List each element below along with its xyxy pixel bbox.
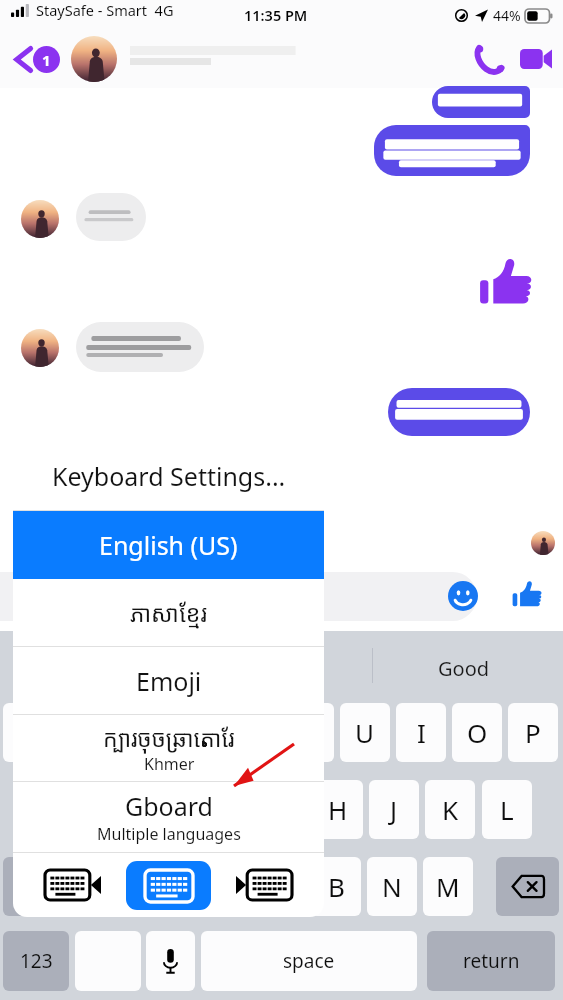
button[interactable]: Dictate bbox=[146, 931, 195, 991]
button[interactable]: Call bbox=[466, 36, 512, 82]
staticText: 44% bbox=[493, 6, 521, 25]
staticText: Gboard bbox=[125, 789, 213, 823]
staticText: English (US) bbox=[99, 528, 238, 562]
button[interactable]: D bbox=[144, 780, 194, 839]
staticText: D bbox=[160, 792, 179, 827]
button[interactable]: Emoji keyboard bbox=[75, 931, 141, 991]
staticText: 11:35 PM bbox=[244, 5, 308, 25]
staticText: 123 bbox=[20, 948, 53, 974]
staticText: space bbox=[283, 948, 335, 974]
button[interactable]: B bbox=[311, 857, 361, 916]
staticText: Good bbox=[438, 655, 490, 682]
button[interactable]: Previous keyboard bbox=[45, 867, 101, 903]
staticText: ភាសាខ្មែរ bbox=[130, 597, 208, 628]
staticText: X bbox=[159, 869, 175, 904]
button[interactable]: Y bbox=[284, 703, 334, 762]
staticText: I bbox=[417, 715, 426, 750]
staticText: return bbox=[463, 948, 520, 974]
button[interactable]: P bbox=[508, 703, 558, 762]
staticText: P bbox=[525, 715, 541, 750]
button[interactable]: Z bbox=[86, 857, 136, 916]
staticText: 1 bbox=[42, 50, 51, 70]
staticText: Keyboard Settings... bbox=[52, 459, 286, 493]
staticText: L bbox=[500, 792, 514, 827]
button[interactable]: U bbox=[340, 703, 390, 762]
staticText: StaySafe - Smart 4G bbox=[36, 0, 174, 20]
button[interactable]: 123 bbox=[3, 931, 69, 991]
button[interactable]: ក្បារចុចឆ្រាតោរែ bbox=[13, 715, 324, 781]
button[interactable]: X bbox=[142, 857, 192, 916]
button[interactable]: Back bbox=[13, 46, 62, 73]
button[interactable]: R bbox=[171, 703, 221, 762]
button[interactable]: H bbox=[313, 780, 363, 839]
button[interactable]: N bbox=[367, 857, 417, 916]
button[interactable]: O bbox=[452, 703, 502, 762]
staticText: V bbox=[271, 869, 287, 904]
button[interactable]: V bbox=[254, 857, 304, 916]
button[interactable]: Next keyboard bbox=[236, 867, 292, 903]
button[interactable]: Keyboard bbox=[126, 861, 211, 910]
staticText: Multiple languages bbox=[97, 823, 241, 845]
button[interactable]: S bbox=[88, 780, 138, 839]
button[interactable]: Backspace bbox=[496, 857, 559, 916]
staticText: R bbox=[188, 715, 205, 750]
button[interactable]: G bbox=[257, 780, 307, 839]
button[interactable]: space bbox=[201, 931, 417, 991]
button[interactable]: Emoji bbox=[448, 581, 478, 611]
staticText: M bbox=[436, 869, 460, 904]
button[interactable]: Gboard bbox=[13, 782, 324, 852]
button[interactable]: F bbox=[201, 780, 251, 839]
button[interactable]: return bbox=[427, 931, 555, 991]
staticText: U bbox=[355, 715, 375, 750]
button[interactable]: English (US) bbox=[13, 511, 324, 579]
button[interactable]: A bbox=[32, 780, 82, 839]
staticText: Emoji bbox=[136, 664, 202, 698]
button[interactable]: Video call bbox=[512, 35, 560, 83]
button[interactable]: Keyboard Settings... bbox=[13, 441, 324, 510]
button[interactable]: T bbox=[227, 703, 277, 762]
staticText: O bbox=[467, 715, 488, 750]
button[interactable]: L bbox=[482, 780, 532, 839]
button[interactable]: Emoji bbox=[13, 647, 324, 714]
button[interactable]: C bbox=[198, 857, 248, 916]
staticText: ក្បារចុចឆ្រាតោរែ bbox=[103, 722, 235, 753]
button[interactable]: I bbox=[396, 703, 446, 762]
staticText: Khmer bbox=[144, 753, 195, 775]
button[interactable]: K bbox=[425, 780, 475, 839]
button[interactable]: Shift bbox=[3, 857, 69, 916]
button[interactable]: Send like bbox=[512, 579, 543, 610]
staticText: H bbox=[328, 792, 348, 827]
button[interactable]: Q bbox=[3, 703, 53, 762]
staticText: N bbox=[382, 869, 402, 904]
button[interactable]: J bbox=[369, 780, 419, 839]
staticText: E bbox=[133, 715, 148, 750]
button[interactable]: E bbox=[115, 703, 165, 762]
button[interactable]: M bbox=[423, 857, 473, 916]
button[interactable]: W bbox=[59, 703, 109, 762]
staticText: K bbox=[442, 792, 459, 827]
staticText: J bbox=[390, 792, 398, 827]
staticText: B bbox=[328, 869, 345, 904]
button[interactable]: ភាសាខ្មែរ bbox=[13, 579, 324, 646]
